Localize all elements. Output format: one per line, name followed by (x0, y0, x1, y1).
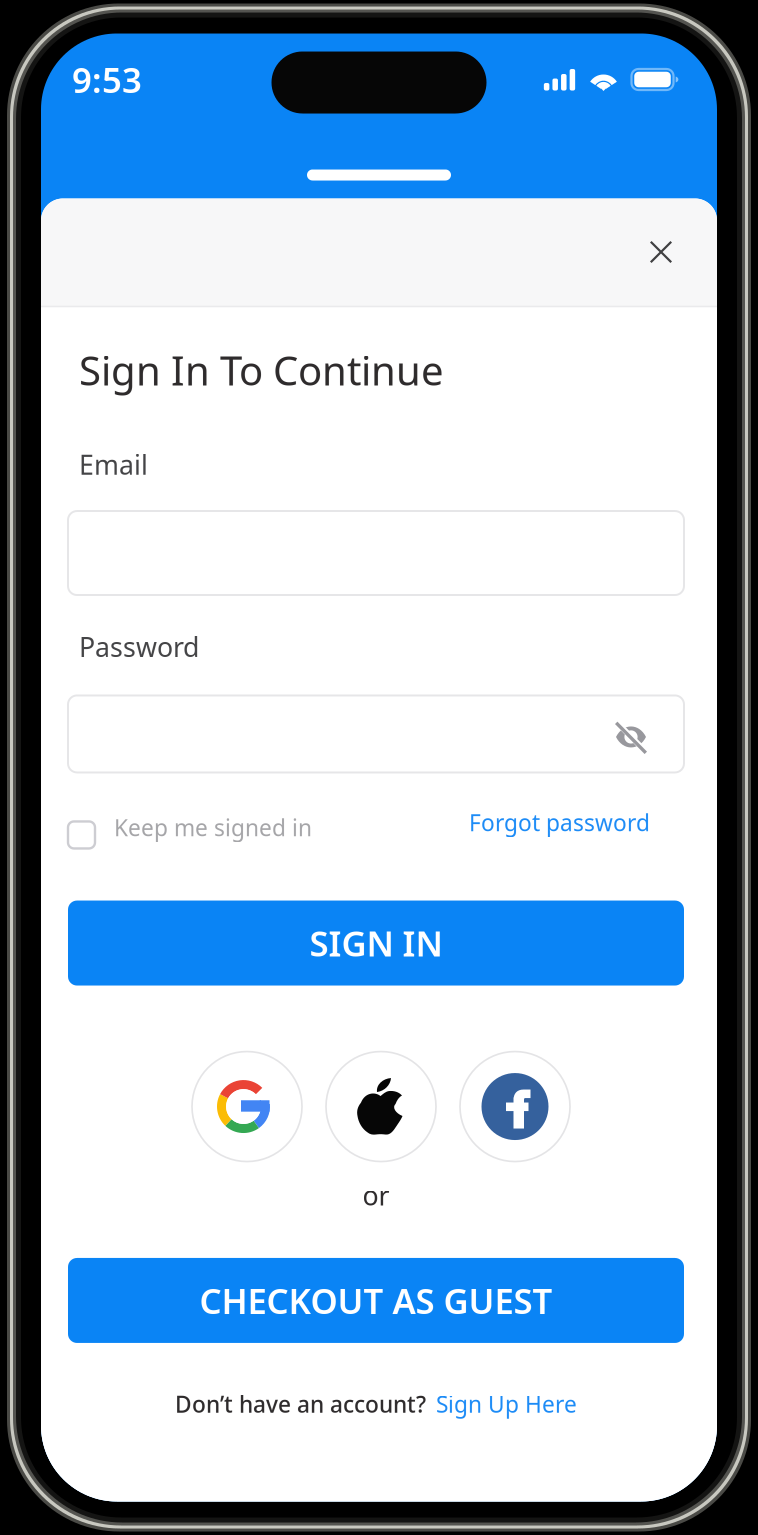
button[interactable]: CHECKOUT AS GUEST (68, 1258, 684, 1343)
button[interactable]: Sign in with Google (192, 1051, 302, 1161)
staticText: or (362, 1177, 389, 1213)
staticText: Sign In To Continue (79, 343, 444, 397)
button[interactable]: SIGN IN (68, 900, 684, 985)
staticText: Keep me signed in (114, 812, 312, 842)
staticText: Password (79, 629, 199, 664)
staticText: Email (79, 447, 148, 482)
staticText: 9:53 (72, 56, 142, 102)
button[interactable]: Sign Up Here (426, 1389, 577, 1419)
staticText: CHECKOUT AS GUEST (199, 1277, 552, 1323)
button[interactable]: Keep me signed in (68, 807, 312, 854)
button[interactable]: Sign in with Facebook (460, 1051, 570, 1161)
button[interactable]: Sign in with Apple (326, 1051, 436, 1161)
button[interactable]: Show password (597, 702, 684, 765)
staticText: Sign Up Here (436, 1389, 577, 1419)
staticText: Don’t have an account? (175, 1389, 426, 1419)
button[interactable]: Close (626, 219, 696, 285)
staticText: Forgot password (469, 807, 650, 837)
button[interactable]: Forgot password (469, 807, 684, 837)
staticText: SIGN IN (309, 920, 442, 966)
